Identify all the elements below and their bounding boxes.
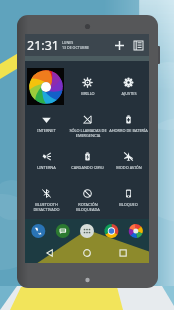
button[interactable]: BLUETOOTH DESACTIVADO <box>25 180 67 217</box>
button[interactable]: Phone <box>31 224 45 238</box>
button[interactable]: Back <box>39 245 61 261</box>
button[interactable]: Messages <box>56 224 70 238</box>
staticText: AHORRO DE BATERÍA <box>109 128 148 133</box>
button[interactable]: All apps <box>80 224 94 238</box>
staticText: MODO AVIÓN <box>116 165 142 170</box>
button[interactable]: Home <box>76 245 98 261</box>
staticText: CARGANDO (28%) <box>71 165 104 170</box>
staticText: BRILLO <box>81 91 95 96</box>
staticText: INTERNET <box>37 128 56 133</box>
button[interactable]: MODO AVIÓN <box>108 143 149 180</box>
button[interactable]: ROTACIÓN BLOQUEADA <box>67 180 108 217</box>
button[interactable]: Chrome <box>104 224 118 238</box>
button[interactable]: Recent apps <box>112 245 134 261</box>
staticText: ROTACIÓN BLOQUEADA <box>76 202 100 212</box>
button[interactable]: AHORRO DE BATERÍA <box>108 106 149 143</box>
button[interactable]: BRILLO <box>67 69 108 106</box>
button[interactable]: BLOQUEO <box>108 180 149 217</box>
button[interactable]: LINTERNA <box>25 143 67 180</box>
staticText: SÓLO LLAMADAS DE EMERGENCIA <box>69 128 107 138</box>
button[interactable]: INTERNET <box>25 106 67 143</box>
staticText: BLOQUEO <box>119 202 138 207</box>
staticText: 21:31 <box>27 37 59 54</box>
button[interactable]: Photos <box>129 224 143 238</box>
button[interactable]: NUCLEO <box>27 68 64 105</box>
button[interactable]: AJUSTES <box>108 69 149 106</box>
staticText: AJUSTES <box>121 91 137 96</box>
staticText: 13 DE OCTUBRE <box>62 45 89 50</box>
button[interactable]: SÓLO LLAMADAS DE EMERGENCIA <box>67 106 108 143</box>
button[interactable]: Notifications list <box>131 38 145 52</box>
staticText: BLUETOOTH DESACTIVADO <box>33 202 60 212</box>
staticText: LINTERNA <box>37 165 56 170</box>
button[interactable]: CARGANDO (28%) <box>67 143 108 180</box>
staticText: LUNES <box>62 40 74 45</box>
button[interactable]: Add user <box>112 38 126 52</box>
